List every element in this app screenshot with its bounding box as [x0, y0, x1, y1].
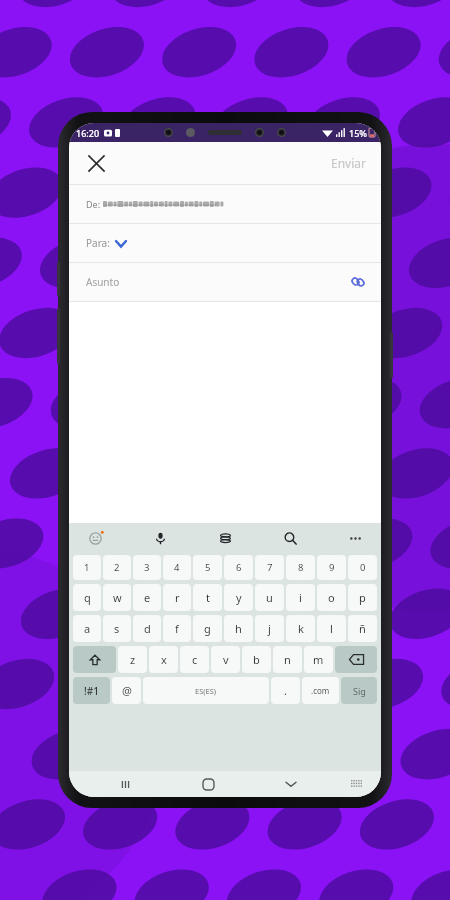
button[interactable]: d	[133, 615, 161, 642]
button[interactable]: 7	[255, 555, 284, 580]
button[interactable]: Para:	[69, 224, 381, 262]
button[interactable]: e	[133, 584, 161, 611]
staticText: o	[328, 590, 335, 605]
button[interactable]: Borrar	[335, 646, 377, 673]
button[interactable]: Recientes	[112, 771, 138, 797]
button[interactable]: 8	[286, 555, 315, 580]
staticText: x	[161, 652, 167, 667]
button[interactable]: j	[255, 615, 284, 642]
staticText: ñ	[359, 621, 366, 636]
staticText: 5	[205, 561, 211, 574]
button[interactable]: u	[255, 584, 284, 611]
button[interactable]: Dictar	[148, 526, 172, 550]
staticText: e	[144, 590, 151, 605]
button[interactable]: Adjuntar archivo	[344, 268, 372, 296]
staticText: @	[122, 683, 132, 698]
button[interactable]: w	[103, 584, 131, 611]
button[interactable]: 3	[133, 555, 161, 580]
button[interactable]: s	[103, 615, 131, 642]
staticText: h	[235, 621, 242, 636]
staticText: s	[114, 621, 120, 636]
button[interactable]: 9	[317, 555, 346, 580]
button[interactable]: Enviar	[324, 149, 373, 177]
staticText: 4	[174, 561, 180, 574]
button[interactable]: 1	[73, 555, 101, 580]
staticText: k	[298, 621, 304, 636]
staticText: g	[204, 621, 211, 636]
staticText: y	[236, 590, 242, 605]
button[interactable]: Buscar	[278, 526, 302, 550]
button[interactable]: Espacio	[143, 677, 269, 704]
button[interactable]: 0	[348, 555, 377, 580]
staticText: Sig	[353, 685, 366, 697]
button[interactable]: o	[317, 584, 346, 611]
button[interactable]: !#1	[73, 677, 110, 704]
button[interactable]: y	[224, 584, 253, 611]
button[interactable]: Cambiar teclado	[345, 773, 367, 795]
button[interactable]: ñ	[348, 615, 377, 642]
staticText: q	[84, 590, 91, 605]
staticText: Enviar	[331, 155, 366, 171]
button[interactable]: l	[317, 615, 346, 642]
button[interactable]: z	[118, 646, 147, 673]
button[interactable]: 4	[163, 555, 191, 580]
button[interactable]: Mayúsculas	[73, 646, 116, 673]
button[interactable]: k	[286, 615, 315, 642]
staticText: 6	[236, 561, 242, 574]
staticText: 9	[329, 561, 335, 574]
button[interactable]: i	[286, 584, 315, 611]
button[interactable]: c	[180, 646, 209, 673]
staticText: t	[206, 590, 210, 605]
staticText: l	[330, 621, 333, 636]
staticText: Asunto	[86, 275, 120, 289]
button[interactable]: h	[224, 615, 253, 642]
button[interactable]: f	[163, 615, 191, 642]
button[interactable]: Más opciones	[343, 526, 367, 550]
staticText: v	[223, 652, 229, 667]
staticText: z	[130, 652, 136, 667]
staticText: m	[313, 652, 324, 667]
staticText: j	[268, 621, 271, 636]
button[interactable]: 5	[193, 555, 222, 580]
button[interactable]: Inicio	[195, 771, 221, 797]
button[interactable]: q	[73, 584, 101, 611]
staticText: a	[84, 621, 91, 636]
staticText: .	[284, 683, 287, 698]
button[interactable]: b	[242, 646, 271, 673]
button[interactable]: Emoji	[83, 526, 107, 550]
staticText: ES(ES)	[195, 686, 217, 696]
button[interactable]: m	[304, 646, 333, 673]
staticText: 16:20	[76, 127, 100, 139]
staticText: f	[175, 621, 179, 636]
button[interactable]: x	[149, 646, 178, 673]
button[interactable]: n	[273, 646, 302, 673]
button[interactable]: @	[112, 677, 141, 704]
button[interactable]: Ocultar teclado	[278, 771, 304, 797]
button[interactable]: Stickers	[213, 526, 237, 550]
button[interactable]: t	[193, 584, 222, 611]
staticText: 7	[267, 561, 273, 574]
staticText: c	[192, 652, 198, 667]
staticText: Para:	[86, 236, 110, 250]
button[interactable]: r	[163, 584, 191, 611]
button[interactable]: v	[211, 646, 240, 673]
staticText: i	[299, 590, 302, 605]
staticText: 1	[84, 561, 90, 574]
staticText: 8	[298, 561, 304, 574]
button[interactable]: g	[193, 615, 222, 642]
button[interactable]: .com	[302, 677, 339, 704]
staticText: p	[359, 590, 366, 605]
staticText: r	[175, 590, 180, 605]
button[interactable]: a	[73, 615, 101, 642]
button[interactable]: p	[348, 584, 377, 611]
staticText: w	[113, 590, 122, 605]
staticText: 3	[144, 561, 150, 574]
button[interactable]: De:	[69, 185, 381, 223]
button[interactable]: .	[271, 677, 300, 704]
button[interactable]: Cerrar	[79, 146, 113, 180]
button[interactable]: 6	[224, 555, 253, 580]
staticText: u	[266, 590, 273, 605]
button[interactable]: 2	[103, 555, 131, 580]
button[interactable]: Siguiente	[341, 677, 377, 704]
staticText: .com	[311, 685, 330, 696]
